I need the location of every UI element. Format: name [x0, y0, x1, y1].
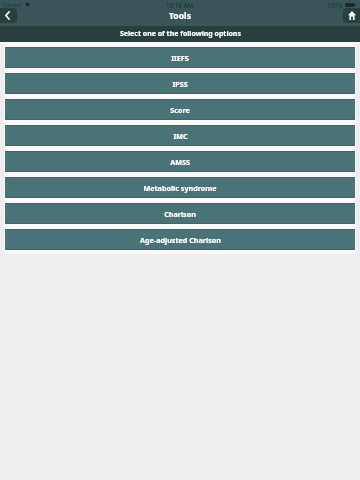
button[interactable]: IIEF5 — [5, 47, 355, 68]
staticText: 10:14 AM — [166, 1, 194, 9]
staticText: AMSS — [170, 157, 190, 167]
staticText: Charlson — [164, 209, 196, 219]
staticText: Tools — [169, 10, 191, 22]
button[interactable]: Home — [343, 8, 360, 23]
staticText: IIEF5 — [171, 53, 189, 63]
staticText: Select one of the following options — [120, 29, 241, 39]
button[interactable]: Score — [5, 99, 355, 120]
button[interactable]: IPSS — [5, 73, 355, 94]
button[interactable]: Metabolic syndrome — [5, 177, 355, 198]
button[interactable]: Charlson — [5, 203, 355, 224]
button[interactable]: Age-adjusted Charlson — [5, 229, 355, 250]
staticText: IPSS — [172, 79, 188, 89]
button[interactable]: AMSS — [5, 151, 355, 172]
button[interactable]: Back — [0, 8, 17, 23]
staticText: Metabolic syndrome — [143, 183, 217, 193]
staticText: IMC — [173, 131, 188, 141]
staticText: 100% — [327, 1, 343, 9]
button[interactable]: IMC — [5, 125, 355, 146]
staticText: Score — [170, 105, 190, 115]
staticText: Carrier — [3, 1, 23, 9]
staticText: Age-adjusted Charlson — [140, 235, 221, 245]
